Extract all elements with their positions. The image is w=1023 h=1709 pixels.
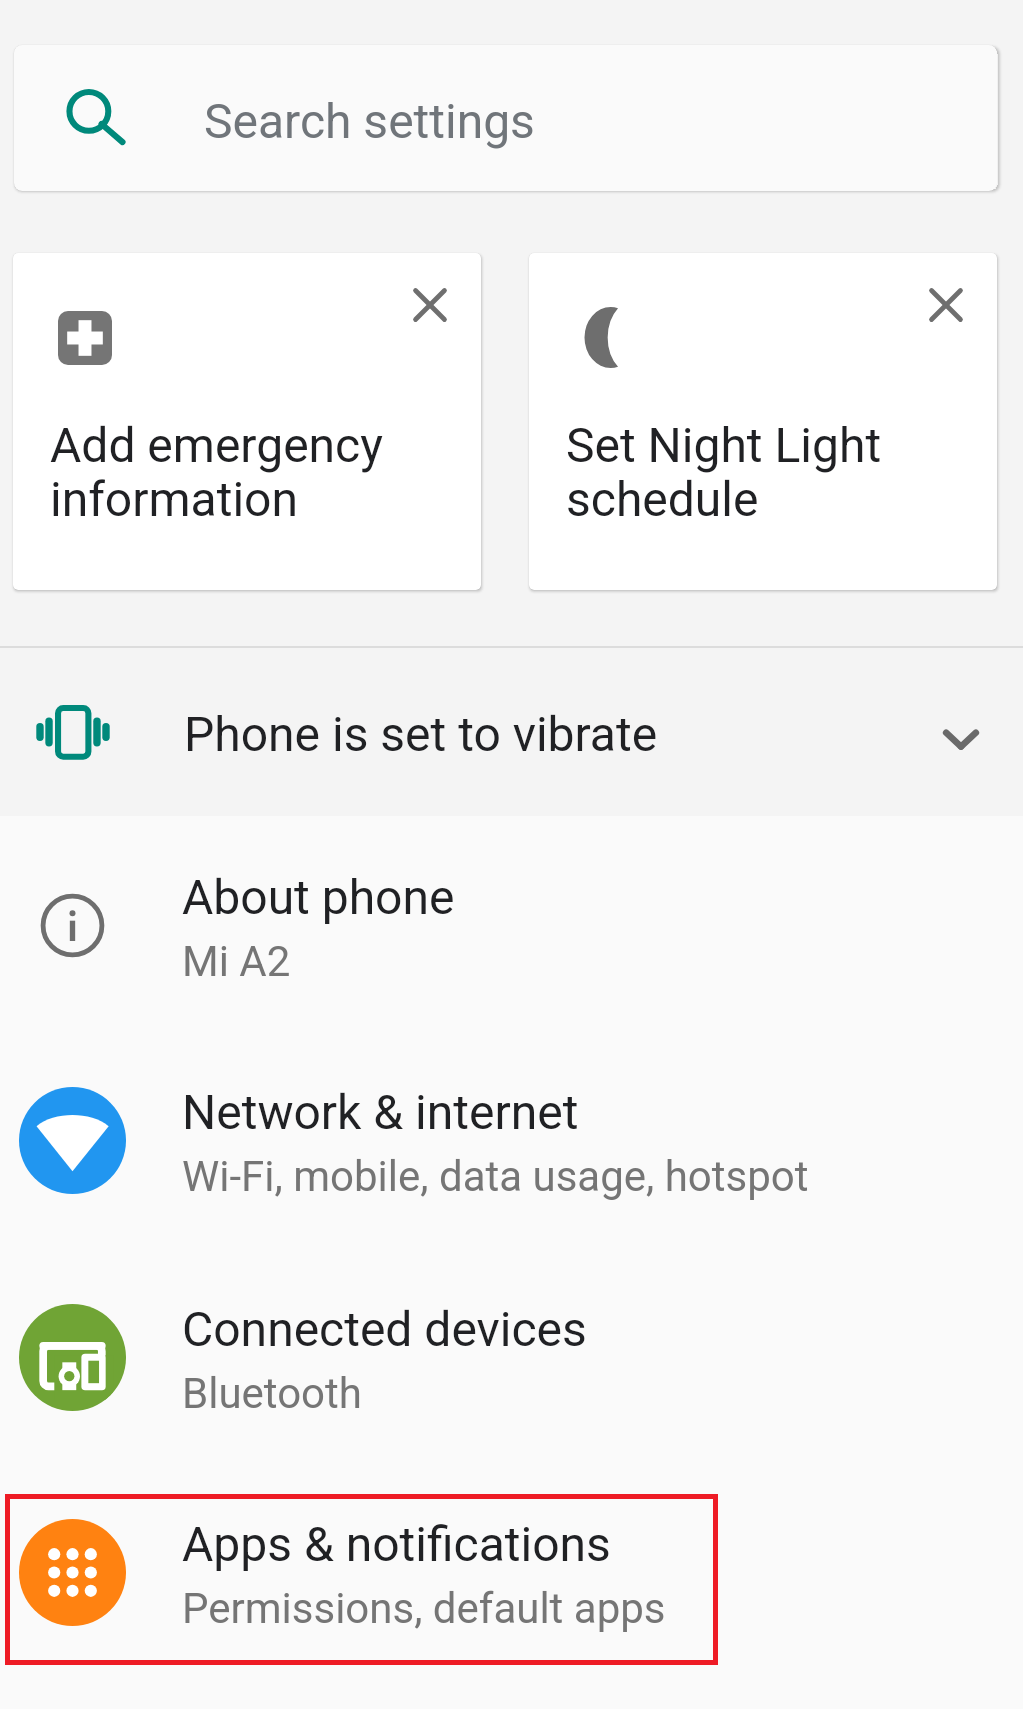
- button[interactable]: Dismiss: [919, 278, 973, 332]
- staticText: Network & internet: [182, 1084, 579, 1140]
- button[interactable]: Dismiss: [403, 278, 457, 332]
- staticText: Search settings: [204, 93, 535, 149]
- button[interactable]: Set Night Light schedule: [529, 253, 997, 590]
- button[interactable]: Connected devices: [0, 1257, 1023, 1457]
- button[interactable]: About phone: [0, 825, 1023, 1025]
- staticText: Permissions, default apps: [182, 1584, 666, 1633]
- button[interactable]: Apps & notifications: [0, 1472, 1023, 1672]
- staticText: Apps & notifications: [182, 1516, 611, 1572]
- staticText: Phone is set to vibrate: [184, 706, 658, 762]
- button[interactable]: Network & internet: [0, 1040, 1023, 1240]
- button[interactable]: Search settings: [14, 45, 997, 191]
- staticText: Bluetooth: [182, 1369, 362, 1418]
- staticText: About phone: [182, 869, 455, 925]
- staticText: Connected devices: [182, 1301, 587, 1357]
- staticText: Add emergency information: [50, 417, 383, 527]
- staticText: Wi-Fi, mobile, data usage, hotspot: [182, 1152, 809, 1201]
- staticText: Mi A2: [182, 937, 291, 986]
- button[interactable]: Phone is set to vibrate: [0, 648, 1023, 816]
- staticText: Set Night Light schedule: [566, 417, 882, 527]
- button[interactable]: Expand: [930, 697, 992, 759]
- button[interactable]: Add emergency information: [13, 253, 481, 590]
